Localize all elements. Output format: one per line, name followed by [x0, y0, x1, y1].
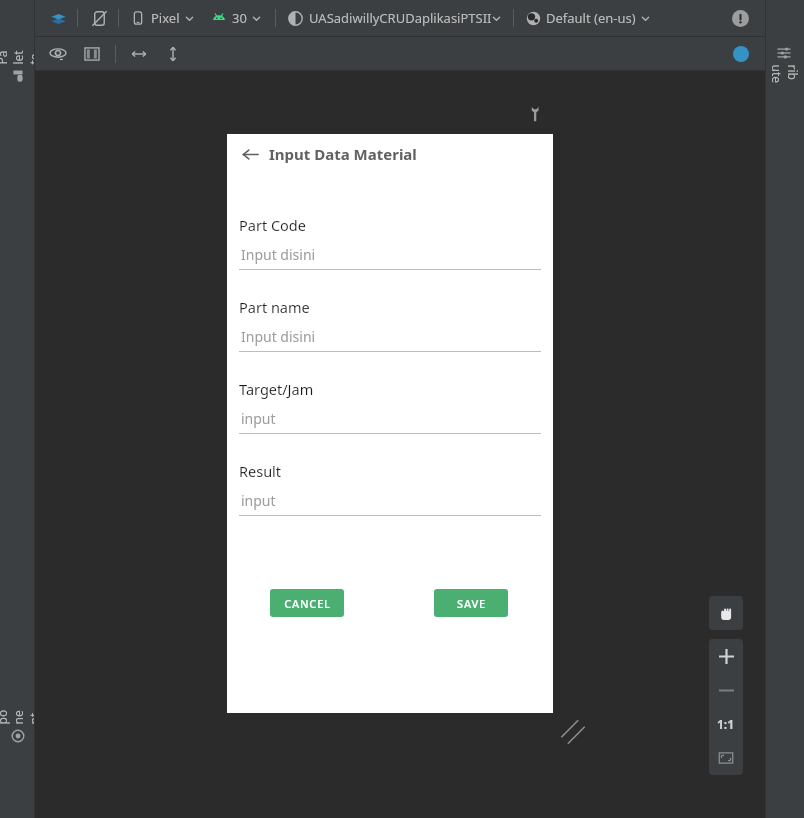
button[interactable]: Layout mode: [79, 41, 105, 67]
staticText: Part name: [239, 297, 310, 317]
button[interactable]: Orientation: [86, 5, 112, 31]
button[interactable]: Pixel: [129, 5, 196, 31]
button[interactable]: Part name: [239, 297, 541, 352]
staticText: UASadiwillyCRUDaplikasiPTSII: [309, 9, 492, 27]
staticText: CANCEL: [284, 596, 331, 611]
button[interactable]: SAVE: [434, 589, 508, 617]
staticText: Result: [239, 461, 282, 481]
button[interactable]: Attributes: [765, 6, 804, 126]
staticText: input: [241, 409, 276, 428]
staticText: Input Data Material: [269, 144, 417, 164]
button[interactable]: Warnings: [727, 5, 753, 31]
staticText: 30: [232, 9, 247, 27]
button[interactable]: Default (en-us): [524, 5, 652, 31]
button[interactable]: Horizontal constraint: [128, 43, 150, 65]
staticText: 1:1: [717, 716, 735, 732]
staticText: Default (en-us): [546, 9, 636, 27]
button[interactable]: Design tools: [524, 103, 546, 125]
staticText: Target/Jam: [239, 379, 314, 399]
button[interactable]: Vertical constraint: [162, 43, 184, 65]
staticText: Input disini: [241, 327, 316, 346]
staticText: SAVE: [457, 596, 486, 611]
button[interactable]: Back: [237, 141, 263, 167]
button[interactable]: Help: [729, 42, 753, 66]
button[interactable]: Target/Jam: [239, 379, 541, 434]
button[interactable]: Zoom to fit: [709, 741, 743, 775]
button[interactable]: CANCEL: [270, 589, 344, 617]
staticText: Input disini: [241, 245, 316, 264]
button[interactable]: Palette: [0, 10, 35, 120]
button[interactable]: Result: [239, 461, 541, 516]
staticText: input: [241, 491, 276, 510]
button[interactable]: Component Tree: [0, 650, 35, 800]
staticText: Palette: [0, 47, 41, 64]
button[interactable]: Zoom in: [709, 639, 743, 673]
button[interactable]: Part Code: [239, 215, 541, 270]
button[interactable]: Design mode: [45, 5, 71, 31]
button[interactable]: Pan: [709, 596, 743, 630]
button[interactable]: 30: [210, 5, 263, 31]
staticText: Part Code: [239, 215, 306, 235]
button[interactable]: View options: [45, 41, 71, 67]
staticText: Attributes: [752, 64, 804, 85]
staticText: Component Tree: [0, 707, 73, 724]
staticText: Pixel: [151, 9, 180, 27]
button[interactable]: Zoom to 100 percent: [709, 707, 743, 741]
button[interactable]: Zoom out: [709, 673, 743, 707]
button[interactable]: UASadiwillyCRUDaplikasiPTSII: [286, 5, 503, 31]
